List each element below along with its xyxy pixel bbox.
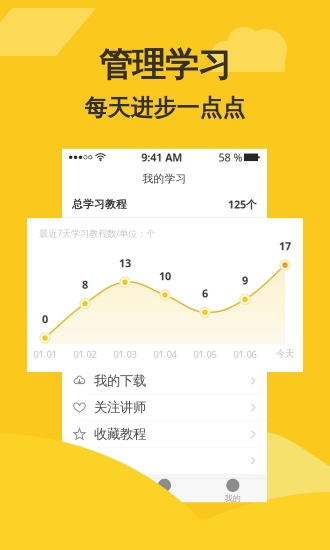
staticText: 01.04: [153, 348, 176, 360]
staticText: 管理学习: [99, 44, 231, 85]
staticText: 8: [82, 278, 88, 292]
button[interactable]: 收藏教程: [62, 421, 267, 447]
staticText: 10: [159, 269, 171, 283]
staticText: 我的下载: [94, 373, 146, 389]
button[interactable]: 关注讲师: [62, 394, 267, 420]
staticText: 01.03: [113, 348, 136, 360]
staticText: 总学习教程: [72, 198, 127, 211]
staticText: 01.02: [73, 348, 96, 360]
button[interactable]: 我的: [199, 479, 267, 502]
staticText: 125个: [228, 197, 257, 211]
staticText: 9:41 AM: [141, 150, 182, 164]
staticText: 01.05: [193, 348, 216, 360]
staticText: 0: [42, 312, 48, 326]
staticText: 01.06: [233, 348, 256, 360]
staticText: 01.01: [33, 348, 56, 360]
staticText: 每天进步一点点: [84, 94, 245, 122]
staticText: 关注讲师: [94, 399, 146, 416]
staticText: 17: [279, 239, 291, 253]
staticText: 13: [119, 256, 131, 270]
staticText: 58 %: [218, 150, 242, 164]
staticText: 我的学习: [142, 172, 186, 185]
staticText: 6: [202, 286, 208, 300]
staticText: 收藏教程: [94, 426, 146, 442]
staticText: 9: [242, 273, 248, 287]
staticText: 今天: [276, 348, 294, 359]
button[interactable]: 我的下载: [62, 368, 267, 394]
staticText: 我的: [225, 493, 241, 503]
button[interactable]: 发现: [130, 479, 199, 502]
button[interactable]: [62, 448, 267, 474]
staticText: 最近7天学习教程数/单位：个: [39, 227, 155, 239]
